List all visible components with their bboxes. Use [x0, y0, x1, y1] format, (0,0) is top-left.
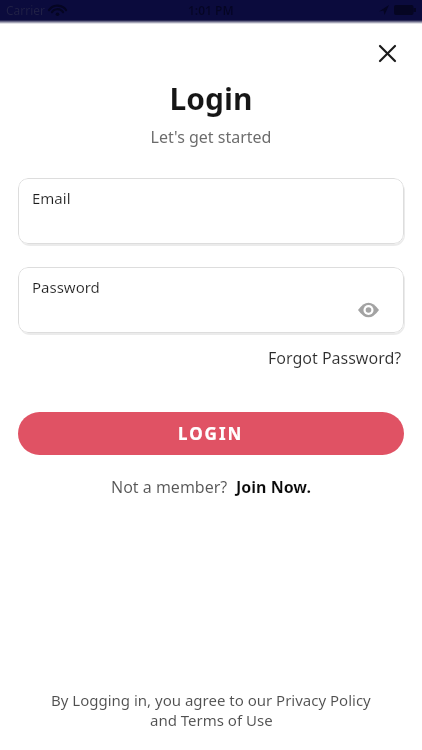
staticText: Login [0, 78, 422, 119]
button[interactable] [350, 292, 386, 328]
staticText: 1:01 PM [188, 2, 234, 18]
staticText: Not a member? [111, 476, 236, 498]
staticText: Email [32, 188, 71, 208]
button[interactable]: Email [18, 178, 404, 244]
staticText: By Logging in, you agree to our Privacy … [51, 690, 371, 710]
button[interactable]: Password [18, 267, 404, 333]
staticText: and Terms of Use [150, 710, 273, 730]
staticText: Let's get started [0, 126, 422, 148]
button[interactable]: Join Now. [236, 476, 311, 498]
staticText: LOGIN [178, 422, 244, 445]
staticText: Carrier [6, 2, 46, 18]
staticText: Password [32, 277, 100, 297]
button[interactable]: LOGIN [18, 412, 404, 455]
button[interactable]: Forgot Password? [268, 347, 402, 369]
button[interactable] [367, 33, 407, 73]
